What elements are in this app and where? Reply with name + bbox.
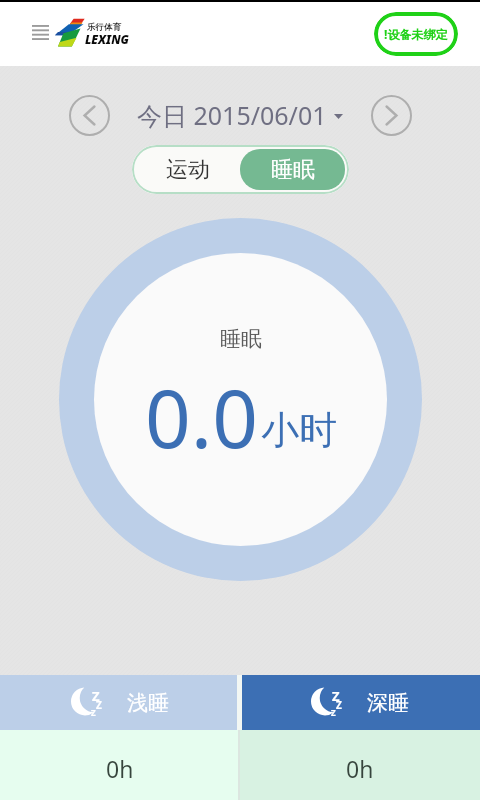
staticText: 0h	[106, 753, 134, 784]
staticText: !设备未绑定	[384, 26, 448, 42]
staticText: Z	[331, 707, 336, 718]
staticText: 0h	[346, 753, 374, 784]
button[interactable]: Menu	[22, 16, 57, 51]
button[interactable]: !设备未绑定	[374, 12, 458, 56]
staticText: Z	[96, 698, 102, 712]
staticText: 今日 2015/06/01	[137, 98, 327, 132]
staticText: 睡眠	[271, 156, 315, 184]
staticText: 乐行体育	[87, 22, 121, 33]
staticText: LEXING	[85, 31, 129, 47]
button[interactable]: 运动	[136, 149, 240, 190]
staticText: 运动	[166, 156, 210, 184]
button[interactable]: Next day	[370, 94, 412, 136]
button[interactable]: Z	[0, 675, 240, 730]
staticText: 浅睡	[127, 690, 169, 716]
staticText: Z	[336, 698, 342, 712]
button[interactable]: Z	[240, 675, 480, 730]
button[interactable]: Previous day	[68, 94, 110, 136]
button[interactable]: 睡眠	[240, 149, 345, 190]
staticText: Z	[92, 687, 100, 705]
staticText: 睡眠	[220, 326, 262, 352]
staticText: Z	[91, 707, 96, 718]
staticText: 0.0	[145, 362, 258, 471]
staticText: 小时	[261, 406, 337, 454]
staticText: Z	[332, 687, 340, 705]
staticText: 深睡	[367, 690, 409, 716]
